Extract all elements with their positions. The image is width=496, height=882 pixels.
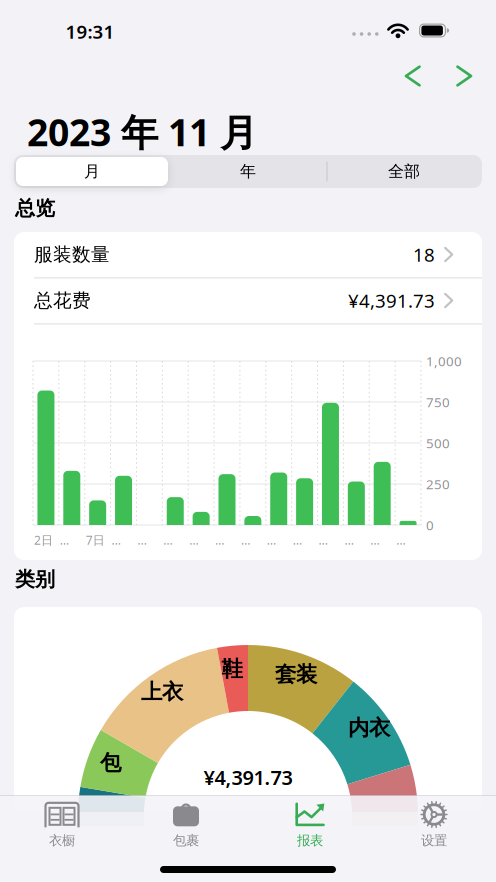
staticText: 2日 [34, 532, 53, 548]
staticText: 2023 年 11 月 [27, 107, 257, 157]
staticText: 月 [84, 162, 100, 181]
staticText: ¥4,391.73 [348, 288, 435, 313]
staticText: 包裹 [173, 832, 199, 849]
button[interactable]: 包裹 [131, 799, 241, 851]
staticText: 250 [426, 475, 450, 493]
button[interactable]: 衣橱 [7, 799, 117, 851]
staticText: 总览 [15, 196, 55, 221]
staticText: 总花费 [34, 289, 91, 312]
button[interactable]: 全部 [329, 157, 479, 186]
staticText: … [396, 532, 405, 548]
staticText: 报表 [297, 832, 323, 849]
staticText: … [215, 532, 224, 548]
staticText: 1,000 [426, 352, 462, 370]
staticText: … [137, 532, 146, 548]
staticText: 衣橱 [49, 832, 75, 849]
staticText: … [60, 532, 69, 548]
staticText: … [241, 532, 250, 548]
staticText: ¥4,391.73 [203, 764, 292, 791]
staticText: 7日 [86, 532, 105, 548]
button[interactable]: Next month [452, 64, 476, 87]
staticText: 年 [240, 162, 256, 181]
staticText: … [370, 532, 379, 548]
staticText: … [189, 532, 198, 548]
staticText: … [293, 532, 302, 548]
staticText: … [163, 532, 172, 548]
staticText: 设置 [421, 832, 447, 849]
staticText: 全部 [388, 162, 420, 181]
button[interactable]: 报表 [255, 799, 365, 851]
staticText: … [112, 532, 121, 548]
button[interactable]: 总花费 [14, 278, 482, 323]
button[interactable]: Previous month [401, 64, 425, 87]
button[interactable]: 年 [173, 157, 323, 186]
staticText: … [344, 532, 353, 548]
staticText: 0 [426, 516, 434, 534]
staticText: … [267, 532, 276, 548]
staticText: 750 [426, 393, 450, 411]
staticText: 鞋 [221, 656, 242, 682]
button[interactable]: 设置 [379, 799, 489, 851]
staticText: 类别 [15, 567, 55, 592]
button[interactable]: 月 [16, 157, 168, 186]
staticText: 500 [426, 434, 450, 452]
staticText: … [318, 532, 327, 548]
button[interactable]: 服装数量 [14, 232, 482, 277]
staticText: 18 [413, 242, 435, 267]
staticText: 服装数量 [34, 243, 110, 266]
staticText: 内衣 [348, 715, 390, 741]
staticText: 上衣 [141, 679, 183, 705]
staticText: 19:31 [65, 19, 114, 44]
staticText: 套装 [275, 661, 317, 688]
staticText: 包 [100, 750, 121, 776]
